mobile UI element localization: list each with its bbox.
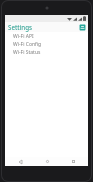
button[interactable]: Back [9, 157, 31, 166]
button[interactable]: Recent apps [62, 157, 84, 166]
button[interactable]: Settings [8, 23, 33, 31]
staticText: Wi-Fi API [13, 33, 34, 40]
button[interactable]: Wi-Fi Config [5, 40, 88, 48]
button[interactable]: Wi-Fi action [79, 24, 86, 31]
button[interactable]: Home [36, 157, 58, 166]
staticText: Settings [8, 23, 33, 31]
staticText: Wi-Fi Config [13, 41, 42, 48]
staticText: Wi-Fi Status [13, 49, 41, 56]
button[interactable]: Wi-Fi API [5, 32, 88, 40]
button[interactable]: Wi-Fi Status [5, 48, 88, 56]
